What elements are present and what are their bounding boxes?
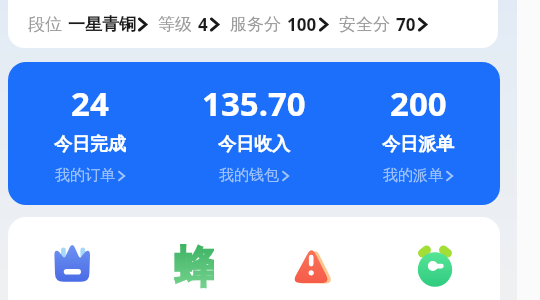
button[interactable] [411, 241, 457, 287]
staticText: 70 [396, 13, 416, 36]
staticText: 等级 [158, 14, 192, 35]
button[interactable]: 24 [54, 62, 126, 205]
button[interactable]: 135.70 [202, 62, 306, 205]
staticText: 段位 [28, 14, 62, 35]
staticText: 安全分 [339, 14, 390, 35]
staticText: 100 [287, 13, 317, 36]
button[interactable] [52, 244, 92, 284]
button[interactable]: 服务分 [230, 13, 328, 36]
button[interactable]: 等级 [158, 13, 219, 36]
staticText: 我的订单 [55, 166, 115, 185]
button[interactable]: 安全分 [339, 13, 427, 36]
button[interactable]: 蜂 [174, 241, 214, 289]
staticText: 今日收入 [218, 133, 290, 156]
staticText: 135.70 [202, 81, 306, 126]
staticText: 我的派单 [383, 166, 443, 185]
staticText: 24 [71, 81, 109, 126]
staticText: 蜂 [174, 241, 214, 289]
staticText: 200 [390, 81, 447, 126]
staticText: 我的钱包 [219, 166, 279, 185]
staticText: 今日派单 [382, 133, 454, 156]
staticText: 今日完成 [54, 133, 126, 156]
staticText: 4 [198, 13, 208, 36]
staticText: 一星青铜 [68, 14, 136, 35]
button[interactable]: 200 [382, 62, 454, 205]
staticText: 服务分 [230, 14, 281, 35]
button[interactable] [290, 243, 336, 289]
button[interactable]: 段位 [28, 14, 147, 35]
